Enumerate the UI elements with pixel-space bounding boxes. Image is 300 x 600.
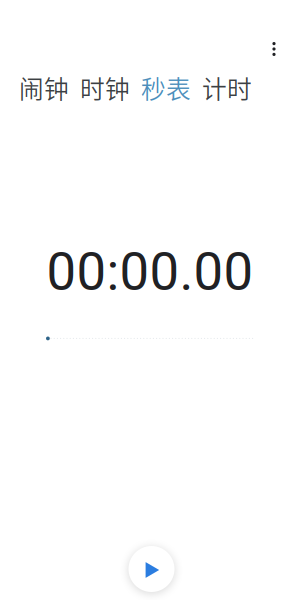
staticText: 00:00.00 bbox=[46, 241, 253, 302]
staticText: 闹钟 bbox=[19, 70, 69, 106]
staticText: 时钟 bbox=[80, 70, 130, 106]
staticText: 计时 bbox=[202, 70, 252, 106]
button[interactable]: 秒表 bbox=[141, 70, 191, 106]
staticText: 秒表 bbox=[141, 70, 191, 106]
button[interactable]: Start bbox=[121, 539, 181, 599]
button[interactable]: 闹钟 bbox=[19, 70, 69, 106]
button[interactable]: 时钟 bbox=[80, 70, 130, 106]
button[interactable]: More options bbox=[257, 32, 291, 66]
button[interactable]: 计时 bbox=[202, 70, 252, 106]
